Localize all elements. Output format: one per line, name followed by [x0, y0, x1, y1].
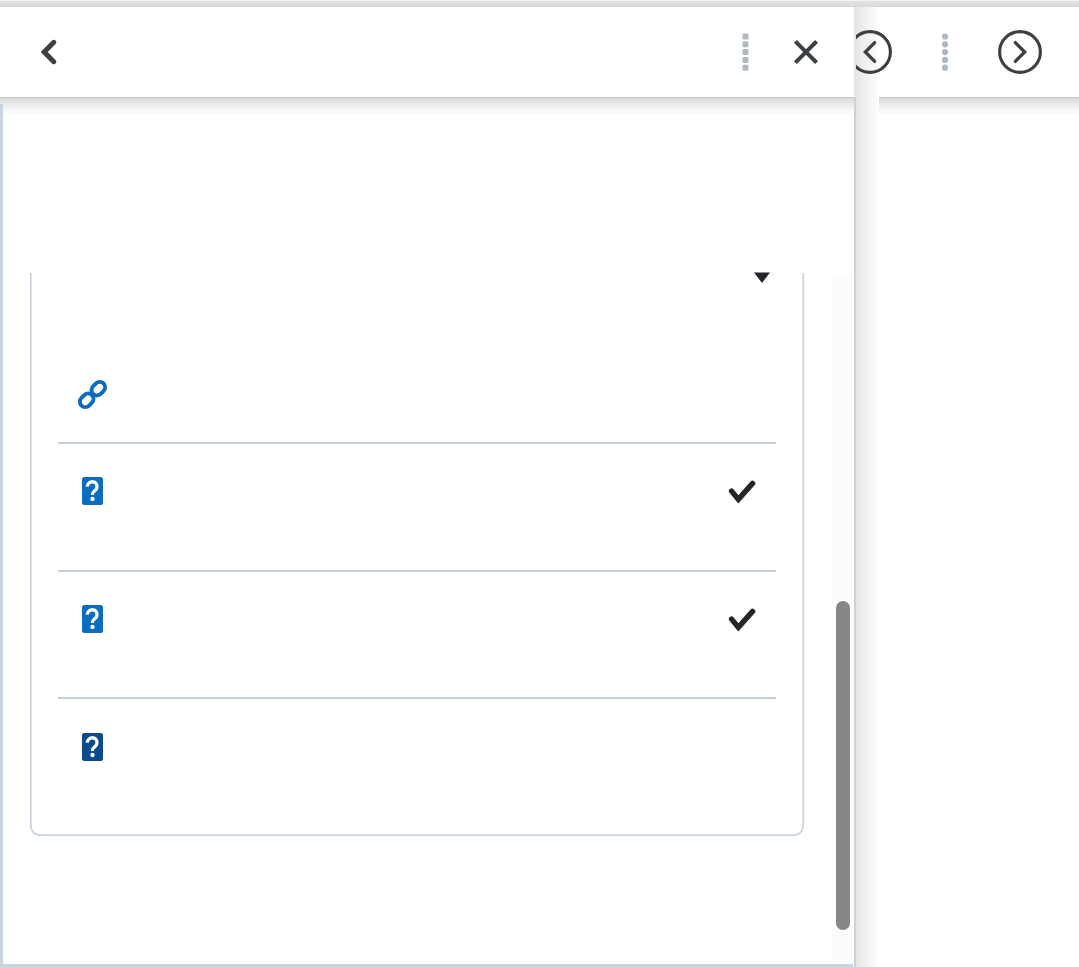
button[interactable]: Done: [719, 468, 765, 514]
button[interactable]: Done: [30, 442, 804, 540]
button[interactable]: [30, 346, 804, 442]
button[interactable]: Back: [26, 30, 70, 74]
button[interactable]: Collapse section: [740, 255, 784, 299]
button[interactable]: Close: [782, 28, 830, 76]
button[interactable]: Done: [30, 570, 804, 668]
button[interactable]: Done: [719, 596, 765, 642]
button[interactable]: Forward: [998, 30, 1042, 74]
button[interactable]: More options: [930, 30, 958, 74]
button[interactable]: More options: [720, 27, 764, 77]
button[interactable]: Back: [848, 30, 892, 74]
button[interactable]: [30, 697, 804, 797]
